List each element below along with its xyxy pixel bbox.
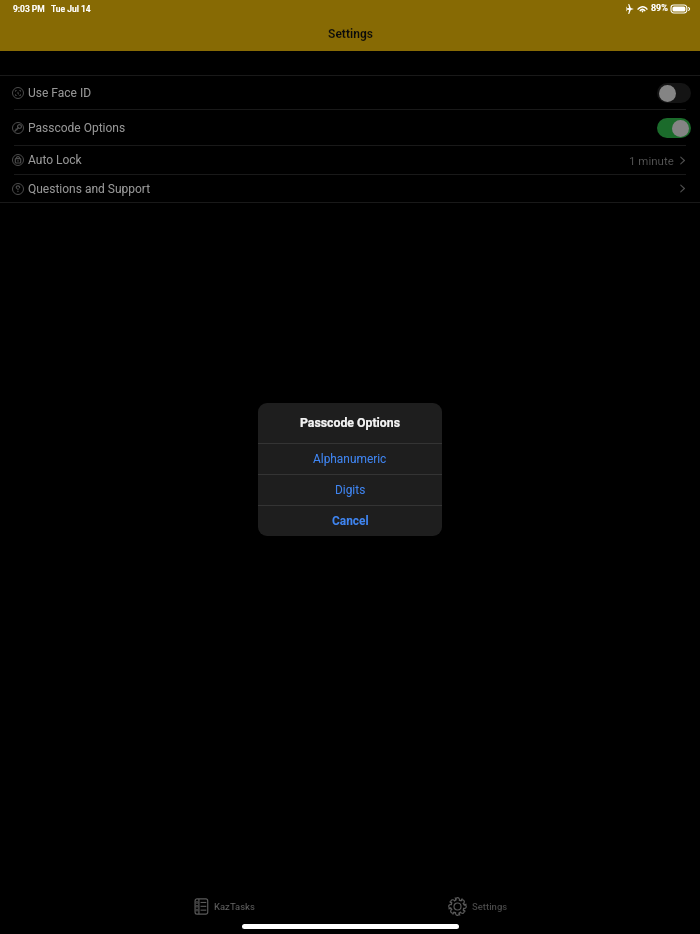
button[interactable]: Passcode Options [0,110,700,145]
staticText: Alphanumeric [313,452,387,466]
button[interactable]: Auto Lock [0,146,700,174]
button[interactable]: Switch on [657,118,691,138]
button[interactable]: Switch off [657,83,691,103]
staticText: 9:03 PM [13,4,45,14]
staticText: Use Face ID [28,86,92,100]
staticText: Tue Jul 14 [51,4,91,14]
staticText: Passcode Options [300,416,401,430]
staticText: Questions and Support [28,182,151,196]
staticText: Settings [328,27,373,41]
button[interactable]: Alphanumeric [258,444,442,474]
staticText: Cancel [332,514,369,528]
button[interactable]: Digits [258,475,442,505]
button[interactable]: Cancel [258,506,442,536]
button[interactable]: Settings [442,892,514,921]
button[interactable]: Questions and Support [0,175,700,202]
button[interactable]: KazTasks [187,893,261,919]
staticText: 89% [651,3,668,14]
staticText: Digits [335,483,366,497]
staticText: Settings [472,901,508,912]
staticText: 1 minute [629,154,674,167]
staticText: Passcode Options [28,121,126,135]
staticText: Auto Lock [28,153,82,167]
staticText: KazTasks [214,901,255,912]
button[interactable]: Use Face ID [0,76,700,109]
